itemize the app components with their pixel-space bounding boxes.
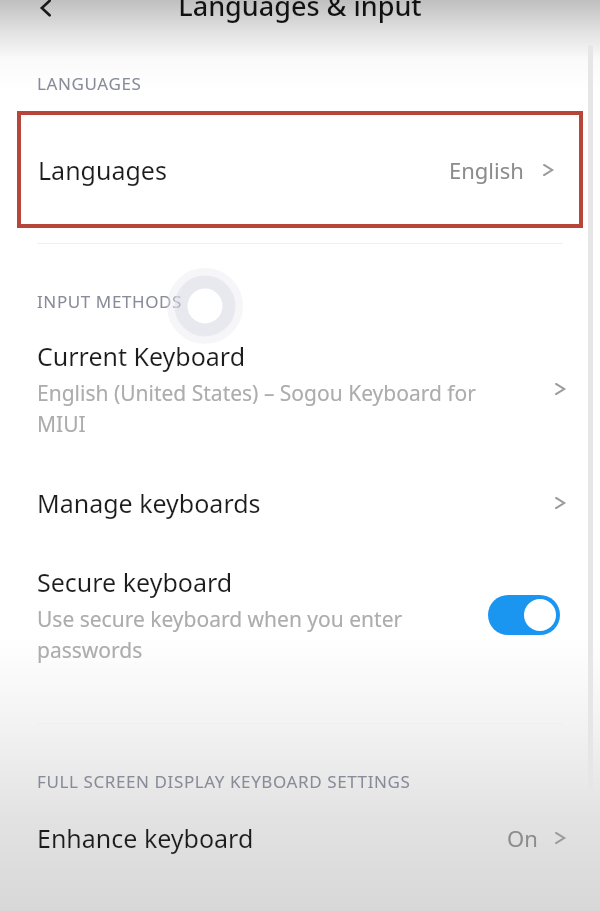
staticText: Secure keyboard <box>37 565 233 599</box>
button[interactable]: Current Keyboard <box>0 339 600 438</box>
staticText: FULL SCREEN DISPLAY KEYBOARD SETTINGS <box>37 770 411 793</box>
staticText: Manage keyboards <box>37 486 550 520</box>
staticText: English <box>449 155 524 185</box>
staticText: Languages & input <box>178 0 422 24</box>
staticText: INPUT METHODS <box>37 290 183 313</box>
button[interactable]: Languages <box>38 113 562 226</box>
staticText: English (United States) – Sogou Keyboard… <box>37 379 508 438</box>
staticText: LANGUAGES <box>37 72 142 95</box>
staticText: On <box>507 823 538 853</box>
button[interactable]: Secure keyboard toggle <box>488 595 560 635</box>
staticText: Use secure keyboard when you enter passw… <box>37 605 458 664</box>
staticText: Current Keyboard <box>37 339 246 373</box>
staticText: Languages <box>38 153 167 187</box>
button[interactable]: Enhance keyboard <box>0 821 600 855</box>
button[interactable]: Secure keyboard <box>0 565 600 664</box>
button[interactable]: Back <box>26 0 66 28</box>
staticText: Enhance keyboard <box>37 821 507 855</box>
button[interactable]: Manage keyboards <box>0 486 600 520</box>
